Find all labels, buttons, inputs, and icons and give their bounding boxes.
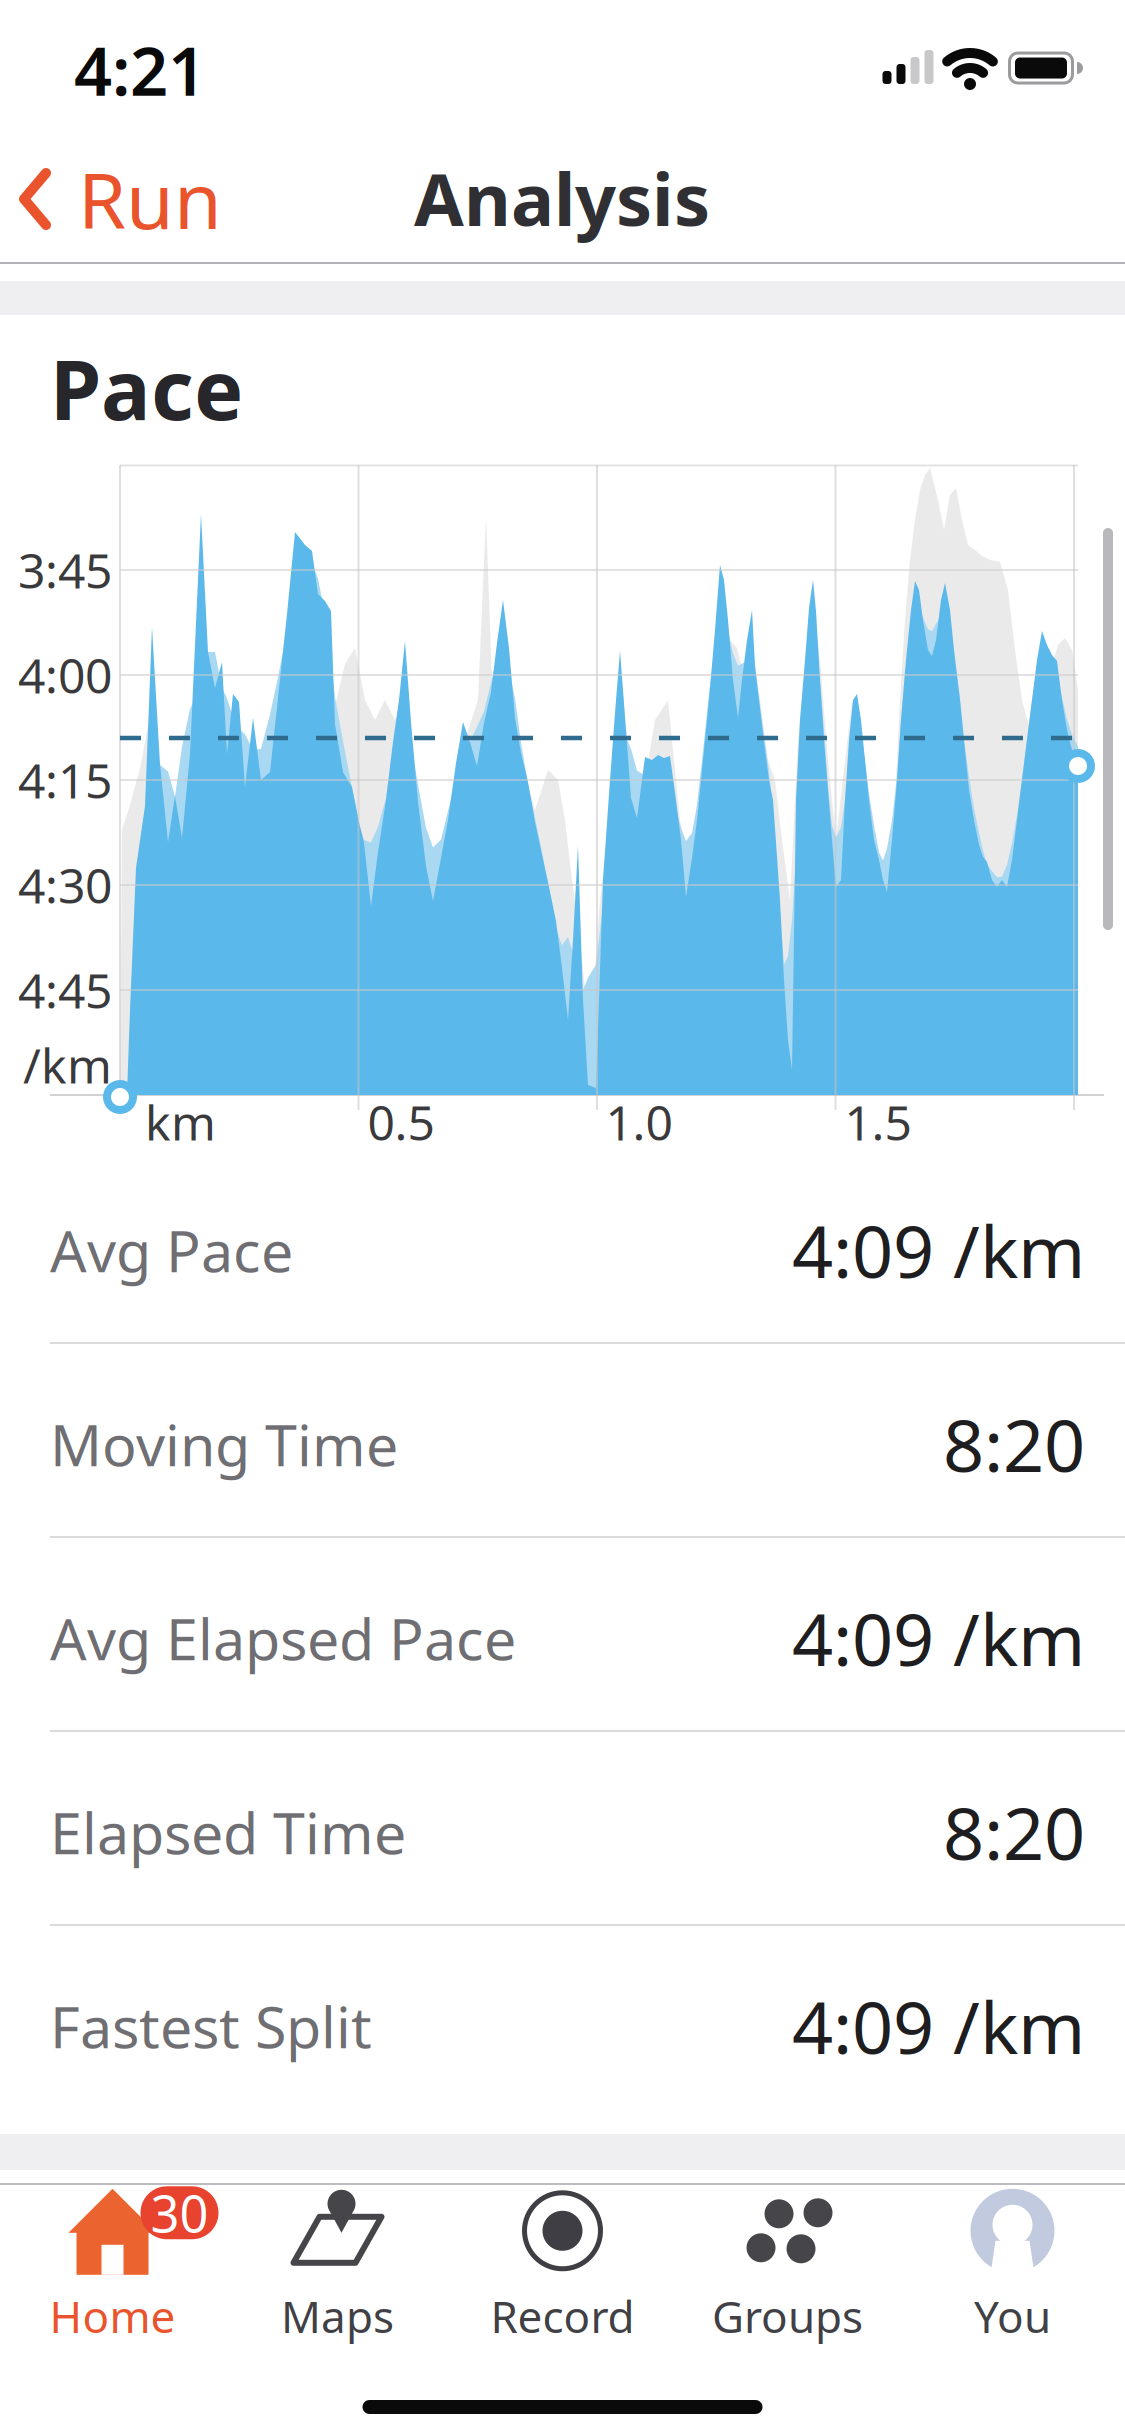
staticText: Elapsed Time (50, 1794, 406, 1870)
staticText: Maps (281, 2287, 394, 2345)
button[interactable]: You (966, 2187, 1058, 2345)
staticText: 3:45 (18, 538, 112, 602)
staticText: Avg Elapsed Pace (50, 1600, 516, 1676)
button[interactable]: Groups (712, 2187, 863, 2345)
staticText: 4:00 (18, 643, 112, 707)
staticText: Run (78, 148, 222, 250)
staticText: 4:15 (18, 748, 112, 812)
staticText: km (145, 1090, 216, 1154)
staticText: Home (49, 2287, 175, 2345)
staticText: 4:09 /km (792, 1590, 1085, 1686)
staticText: /km (23, 1033, 112, 1097)
button[interactable]: Record (490, 2187, 634, 2345)
staticText: Fastest Split (50, 1988, 372, 2064)
button[interactable]: 30 (49, 2187, 175, 2345)
staticText: 4:09 /km (792, 1978, 1085, 2074)
staticText: Record (490, 2287, 634, 2345)
staticText: Moving Time (50, 1406, 398, 1482)
staticText: Analysis (414, 150, 710, 246)
staticText: 1.5 (844, 1090, 911, 1154)
staticText: 1.0 (605, 1090, 672, 1154)
staticText: 4:45 (18, 958, 112, 1022)
staticText: You (974, 2287, 1051, 2345)
staticText: 0.5 (367, 1090, 434, 1154)
staticText: Groups (712, 2287, 863, 2345)
staticText: Avg Pace (50, 1212, 293, 1288)
staticText: 4:21 (74, 26, 206, 114)
staticText: 8:20 (943, 1396, 1085, 1492)
staticText: Pace (50, 333, 243, 443)
button[interactable]: Maps (281, 2187, 394, 2345)
button[interactable]: Run (18, 148, 222, 250)
staticText: 30 (150, 2179, 208, 2246)
staticText: 4:30 (18, 853, 112, 917)
staticText: 8:20 (943, 1784, 1085, 1880)
staticText: 4:09 /km (792, 1202, 1085, 1298)
